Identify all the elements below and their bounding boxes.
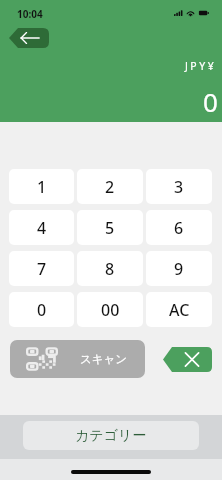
- staticText: 8: [105, 258, 115, 280]
- button[interactable]: AC: [146, 292, 212, 327]
- staticText: 5: [105, 217, 115, 239]
- button[interactable]: Back: [9, 28, 49, 48]
- button[interactable]: スキャン: [10, 340, 145, 378]
- button[interactable]: 6: [146, 210, 212, 245]
- staticText: 9: [174, 258, 184, 280]
- button[interactable]: 2: [77, 169, 143, 204]
- staticText: 3: [174, 176, 184, 198]
- staticText: スキャン: [80, 352, 128, 366]
- staticText: 0: [203, 84, 218, 119]
- button[interactable]: 9: [146, 251, 212, 286]
- staticText: 00: [101, 299, 120, 321]
- staticText: 6: [174, 217, 184, 239]
- staticText: 0: [37, 299, 47, 321]
- button[interactable]: 1: [9, 169, 74, 204]
- button[interactable]: 5: [77, 210, 143, 245]
- button[interactable]: 7: [9, 251, 74, 286]
- staticText: JPY¥: [185, 59, 217, 73]
- button[interactable]: 3: [146, 169, 212, 204]
- staticText: 4: [37, 217, 47, 239]
- staticText: 10:04: [17, 7, 43, 21]
- button[interactable]: 8: [77, 251, 143, 286]
- staticText: カテゴリー: [75, 427, 147, 445]
- button[interactable]: Clear: [163, 347, 212, 372]
- button[interactable]: 0: [9, 292, 74, 327]
- staticText: 2: [105, 176, 115, 198]
- button[interactable]: 4: [9, 210, 74, 245]
- staticText: 7: [37, 258, 47, 280]
- staticText: AC: [169, 299, 190, 321]
- button[interactable]: 00: [77, 292, 143, 327]
- button[interactable]: カテゴリー: [23, 421, 199, 450]
- staticText: 1: [37, 176, 47, 198]
